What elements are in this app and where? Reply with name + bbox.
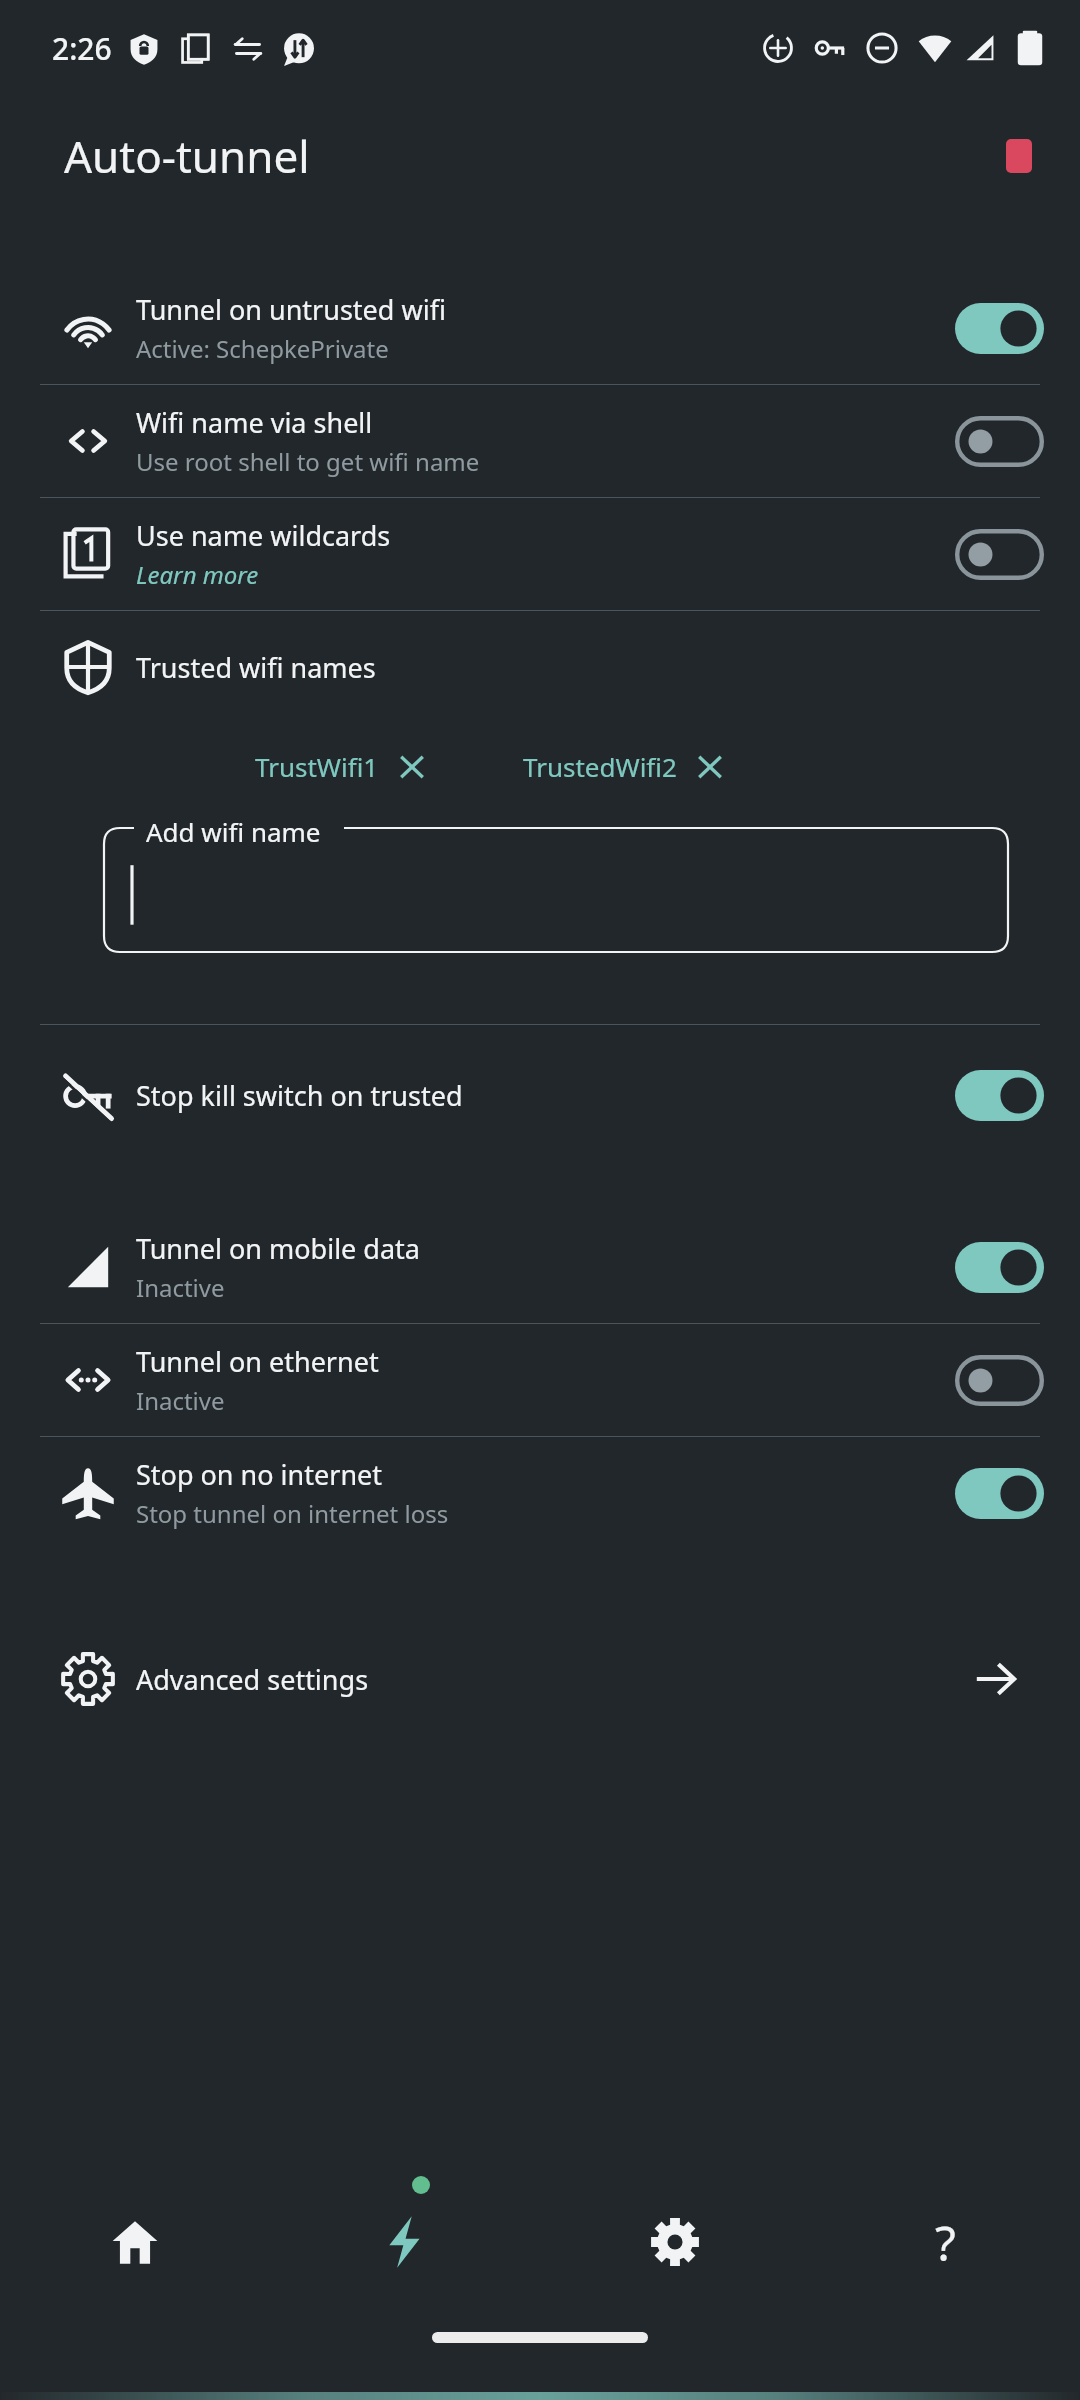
other: Remove TrustedWifi2 (695, 752, 725, 782)
button[interactable]: Tunnel on untrusted wifi (0, 272, 1080, 384)
staticText: Inactive (136, 1384, 225, 1417)
staticText: Active: SchepkePrivate (136, 332, 389, 365)
button[interactable]: Help (810, 2182, 1080, 2302)
button[interactable]: TrustedWifi2 (523, 749, 725, 784)
staticText: Tunnel on mobile data (136, 1230, 420, 1267)
staticText: Advanced settings (136, 1661, 972, 1698)
button[interactable]: Tunnel on mobile data (0, 1211, 1080, 1323)
button[interactable] (955, 1070, 1044, 1121)
staticText: Stop tunnel on internet loss (136, 1497, 449, 1530)
staticText: Use name wildcards (136, 517, 391, 554)
staticText: Wifi name via shell (136, 404, 373, 441)
staticText: ? (935, 2210, 956, 2275)
staticText: Add wifi name (146, 814, 321, 849)
button[interactable] (955, 1468, 1044, 1519)
button[interactable]: Add wifi name (104, 828, 1008, 952)
other: Open advanced settings (972, 1655, 1020, 1703)
staticText: 2:26 (52, 28, 112, 69)
staticText: Auto-tunnel (64, 126, 310, 186)
staticText: Use root shell to get wifi name (136, 445, 480, 478)
button[interactable] (955, 416, 1044, 467)
staticText: Inactive (136, 1271, 225, 1304)
button[interactable]: Settings (540, 2182, 810, 2302)
button[interactable]: Status indicator (1006, 139, 1032, 173)
button[interactable] (955, 303, 1044, 354)
button[interactable]: Trusted wifi names (0, 611, 1080, 723)
button[interactable]: Auto-tunnel (270, 2182, 540, 2302)
button[interactable] (955, 529, 1044, 580)
button[interactable]: Home (0, 2182, 270, 2302)
other: Remove TrustWifi1 (397, 752, 427, 782)
staticText: Tunnel on untrusted wifi (136, 291, 446, 328)
button[interactable]: Advanced settings (0, 1623, 1080, 1735)
button[interactable]: Tunnel on ethernet (0, 1324, 1080, 1436)
staticText: TrustedWifi2 (523, 749, 677, 784)
staticText: Learn more (136, 558, 259, 591)
staticText: TrustWifi1 (255, 749, 379, 784)
button[interactable] (955, 1355, 1044, 1406)
staticText: Tunnel on ethernet (136, 1343, 379, 1380)
button[interactable]: Wifi name via shell (0, 385, 1080, 497)
button[interactable]: Stop on no internet (0, 1437, 1080, 1549)
button[interactable]: Use name wildcards (0, 498, 1080, 610)
button[interactable]: Stop kill switch on trusted (0, 1025, 1080, 1165)
button[interactable]: TrustWifi1 (255, 749, 427, 784)
staticText: Stop on no internet (136, 1456, 383, 1493)
button[interactable] (955, 1242, 1044, 1293)
staticText: Trusted wifi names (136, 649, 376, 686)
staticText: Stop kill switch on trusted (136, 1077, 463, 1114)
